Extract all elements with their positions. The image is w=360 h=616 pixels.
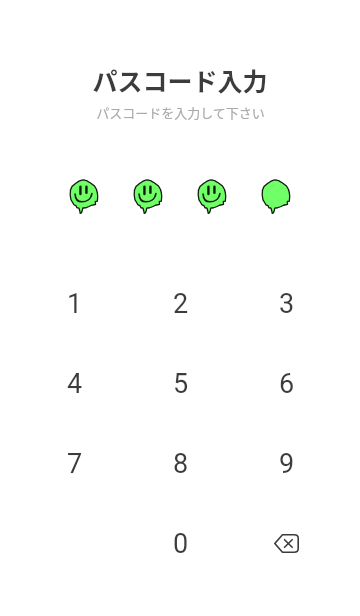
button[interactable]: 0 — [128, 504, 234, 584]
staticText: 3 — [279, 288, 295, 320]
button[interactable]: 7 — [22, 424, 128, 504]
button[interactable]: 3 — [234, 264, 340, 344]
staticText: 6 — [279, 368, 295, 400]
staticText: 2 — [173, 288, 189, 320]
staticText: 9 — [279, 448, 295, 480]
button[interactable]: 8 — [128, 424, 234, 504]
button[interactable]: Backspace — [234, 504, 340, 584]
staticText: パスコード入力 — [92, 62, 268, 98]
staticText: 8 — [173, 448, 189, 480]
staticText: 4 — [67, 368, 83, 400]
button[interactable]: 6 — [234, 344, 340, 424]
staticText: 5 — [173, 368, 189, 400]
button[interactable]: 9 — [234, 424, 340, 504]
staticText: 1 — [67, 288, 83, 320]
button[interactable]: 2 — [128, 264, 234, 344]
button[interactable]: 5 — [128, 344, 234, 424]
staticText: 0 — [173, 528, 189, 560]
staticText: パスコードを入力して下さい — [96, 103, 265, 122]
staticText: 7 — [67, 448, 83, 480]
button[interactable]: 1 — [22, 264, 128, 344]
button[interactable]: 4 — [22, 344, 128, 424]
